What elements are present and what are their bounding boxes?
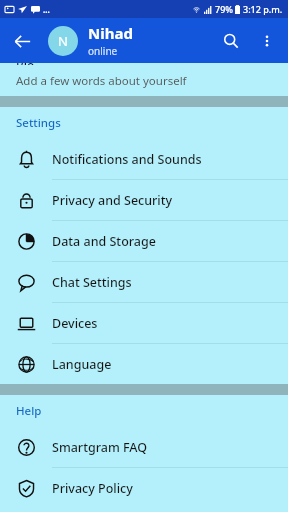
staticText: Smartgram FAQ	[52, 439, 148, 456]
staticText: N	[58, 32, 68, 50]
staticText: Privacy Policy	[52, 480, 133, 497]
staticText: Chat Settings	[52, 274, 132, 291]
button[interactable]: Language	[0, 344, 288, 384]
staticText: Settings	[16, 115, 61, 131]
button[interactable]: Smartgram FAQ	[0, 427, 288, 467]
button[interactable]: Devices	[0, 303, 288, 343]
staticText: Nihad	[88, 23, 133, 43]
button[interactable]: Bio	[0, 63, 288, 96]
staticText: online	[88, 44, 118, 58]
staticText: Add a few words about yourself	[16, 73, 187, 89]
staticText: 79%	[215, 3, 233, 15]
button[interactable]: Back	[4, 23, 40, 59]
staticText: Data and Storage	[52, 233, 156, 250]
staticText: Help	[16, 403, 42, 419]
staticText: Language	[52, 356, 112, 373]
button[interactable]: More options	[252, 26, 282, 56]
staticText: Bio	[16, 63, 35, 65]
button[interactable]: Chat Settings	[0, 262, 288, 302]
staticText: Devices	[52, 315, 98, 332]
staticText: 3:12 p.m.	[243, 3, 283, 15]
button[interactable]: Search	[214, 24, 248, 58]
button[interactable]: Privacy Policy	[0, 468, 288, 508]
button[interactable]: Privacy and Security	[0, 180, 288, 220]
staticText: Notifications and Sounds	[52, 151, 202, 168]
staticText: Privacy and Security	[52, 192, 173, 209]
staticText: ...	[43, 4, 50, 15]
button[interactable]: Data and Storage	[0, 221, 288, 261]
button[interactable]: Notifications and Sounds	[0, 139, 288, 179]
